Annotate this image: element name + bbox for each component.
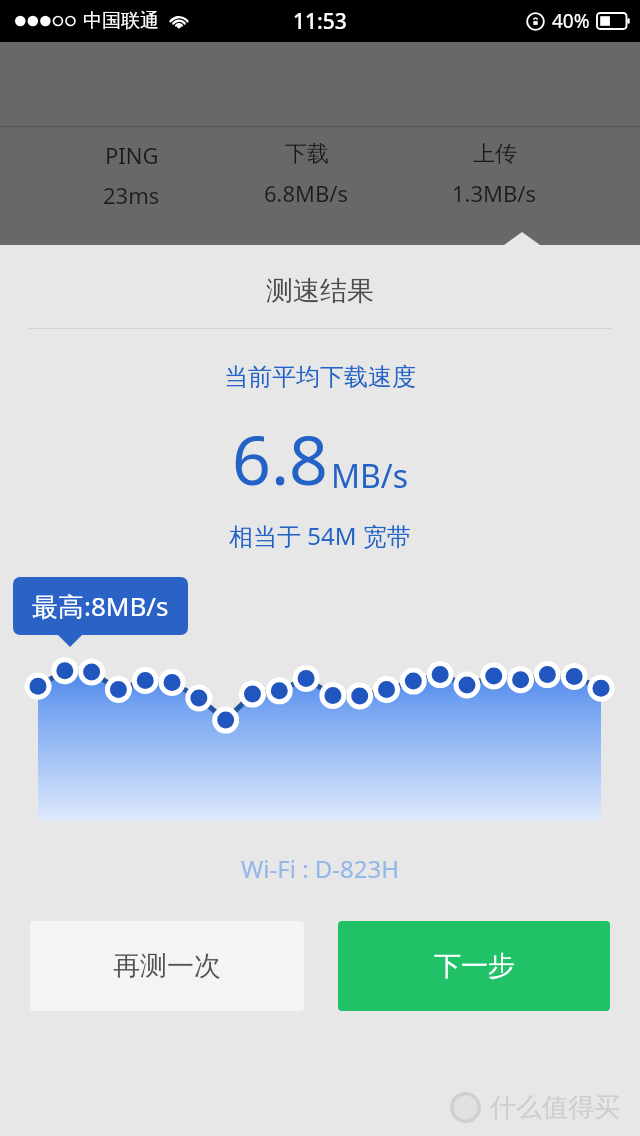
staticText: 最高:8MB/s [32,588,169,624]
staticText: MB/s [331,454,409,498]
staticText: 下载 [285,140,329,168]
staticText: 再测一次 [113,949,221,983]
staticText: 什么值得买 [490,1091,620,1124]
staticText: PING [105,140,159,170]
staticText: 下一步 [434,949,515,983]
staticText: 6.8 [232,412,329,505]
staticText: 6.8MB/s [264,178,349,208]
staticText: 当前平均下载速度 [224,362,416,392]
staticText: 上传 [473,140,517,168]
staticText: 23ms [103,180,160,210]
button[interactable]: 下一步 [338,921,610,1011]
staticText: 40% [552,8,590,34]
staticText: 11:53 [293,7,347,36]
staticText: 1.3MB/s [452,178,537,208]
staticText: 相当于 54M 宽带 [229,519,411,552]
button[interactable]: 再测一次 [30,921,304,1011]
staticText: Wi-Fi : D-823H [241,852,400,885]
other: Logo [450,1092,481,1123]
staticText: 测速结果 [266,274,374,308]
staticText: 中国联通 [83,9,159,33]
